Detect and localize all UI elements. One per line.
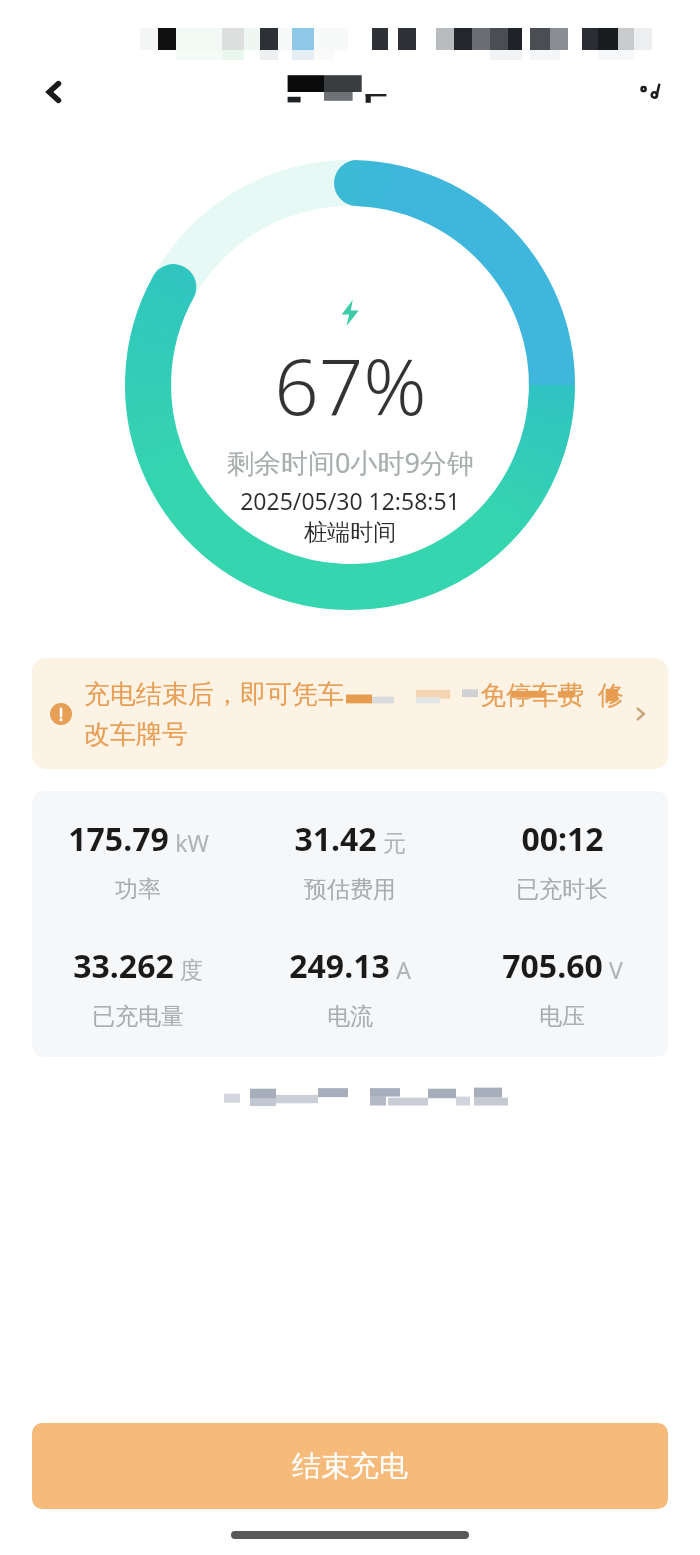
- staticText: 33.262: [73, 944, 174, 988]
- staticText: 已充电量: [92, 1002, 184, 1031]
- staticText: 充电结束后，即可凭车: [84, 678, 344, 711]
- staticText: 00:12: [521, 817, 604, 861]
- staticText: 桩端时间: [304, 518, 396, 547]
- staticText: 电压: [539, 1002, 585, 1031]
- staticText: 元: [383, 829, 406, 858]
- button[interactable]: 结束充电: [32, 1423, 668, 1509]
- staticText: A: [396, 954, 411, 985]
- staticText: 结束充电: [292, 1448, 408, 1485]
- staticText: V: [609, 954, 623, 985]
- button[interactable]: 充电结束后，即可凭车: [32, 658, 668, 769]
- staticText: 705.60: [502, 944, 603, 988]
- staticText: 改车牌号: [84, 718, 188, 751]
- staticText: 功率: [115, 875, 161, 904]
- staticText: 2025/05/30 12:58:51: [240, 485, 460, 516]
- staticText: 电流: [327, 1002, 373, 1031]
- staticText: 175.79: [68, 817, 169, 861]
- staticText: 31.42: [294, 817, 377, 861]
- button[interactable]: Back: [26, 64, 82, 120]
- staticText: 剩余时间0小时9分钟: [227, 444, 474, 481]
- button[interactable]: Service: [626, 66, 678, 118]
- staticText: 免停车费 修: [480, 676, 624, 712]
- staticText: 已充时长: [516, 875, 608, 904]
- staticText: 度: [180, 956, 203, 985]
- staticText: 67%: [274, 332, 427, 438]
- staticText: 预估费用: [304, 875, 396, 904]
- staticText: 249.13: [289, 944, 390, 988]
- staticText: kW: [175, 827, 209, 858]
